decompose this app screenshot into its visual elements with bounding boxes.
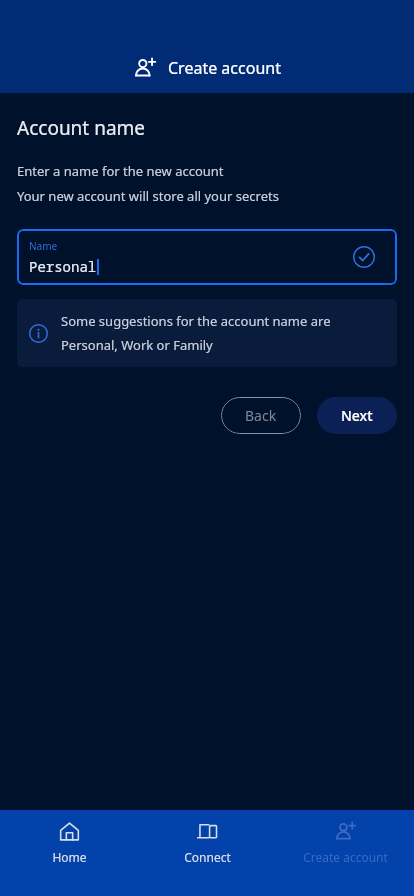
staticText: Back [245, 406, 277, 425]
button[interactable]: Create account [276, 810, 414, 865]
staticText: Next [341, 406, 373, 425]
button[interactable]: Home [0, 810, 138, 865]
button[interactable]: Back [221, 397, 301, 434]
button[interactable]: Create account [126, 53, 289, 83]
staticText: Create account [168, 57, 281, 79]
other: Valid name [353, 246, 375, 268]
staticText: Create account [303, 849, 388, 865]
staticText: Connect [184, 849, 231, 865]
staticText: Personal, Work or Family [61, 336, 213, 354]
staticText: Personal [29, 257, 97, 276]
staticText: Account name [17, 115, 146, 141]
button[interactable]: Next [317, 397, 397, 434]
staticText: Enter a name for the new account [17, 162, 224, 180]
staticText: Home [52, 849, 87, 865]
button[interactable]: Name [17, 229, 397, 285]
button[interactable]: Connect [138, 810, 276, 865]
staticText: Some suggestions for the account name ar… [61, 312, 331, 330]
staticText: Name [29, 239, 58, 253]
staticText: Your new account will store all your sec… [17, 187, 279, 205]
